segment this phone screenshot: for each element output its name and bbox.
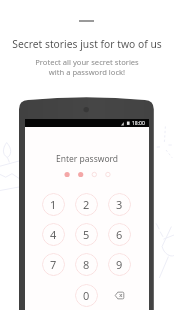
button[interactable]: 9 [108, 253, 131, 276]
staticText: 8 [83, 257, 90, 272]
staticText: 2 [83, 197, 90, 212]
staticText: 7 [50, 257, 57, 272]
staticText: 0 [83, 288, 90, 303]
staticText: 6 [116, 227, 123, 242]
button[interactable]: 2 [75, 193, 98, 216]
button[interactable]: 0 [75, 284, 98, 307]
staticText: 3 [116, 197, 123, 212]
staticText: Secret stories just for two of us [12, 37, 162, 51]
button[interactable]: 5 [75, 223, 98, 246]
staticText: 5 [83, 227, 90, 242]
staticText: Enter password [56, 153, 119, 165]
staticText: Protect all your secret stories with a p… [35, 57, 139, 77]
button[interactable]: 4 [42, 223, 65, 246]
button[interactable]: 3 [108, 193, 131, 216]
staticText: 18:00 [132, 120, 145, 127]
button[interactable]: Backspace [108, 284, 131, 307]
staticText: 4 [50, 227, 57, 242]
button[interactable]: 1 [42, 193, 65, 216]
button[interactable]: 6 [108, 223, 131, 246]
staticText: 9 [116, 257, 123, 272]
staticText: 1 [50, 197, 57, 212]
button[interactable]: 8 [75, 253, 98, 276]
button[interactable]: 7 [42, 253, 65, 276]
